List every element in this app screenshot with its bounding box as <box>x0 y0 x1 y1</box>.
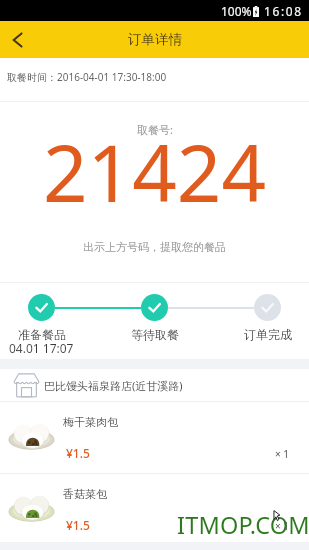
staticText: × 1 <box>275 447 290 461</box>
staticText: ¥1.5 <box>66 445 90 461</box>
staticText: 100% <box>221 3 252 19</box>
staticText: 梅干菜肉包 <box>63 415 118 429</box>
staticText: 出示上方号码，提取您的餐品 <box>83 240 226 254</box>
button[interactable]: 巴比馒头福泉路店(近甘溪路) <box>0 369 309 401</box>
staticText: 16:08 <box>264 3 303 19</box>
staticText: ¥1.5 <box>66 517 90 533</box>
staticText: 取餐时间：2016-04-01 17:30-18:00 <box>7 70 167 84</box>
staticText: 订单完成 <box>244 327 292 342</box>
staticText: 订单详情 <box>128 31 182 48</box>
staticText: 取餐号: <box>137 122 173 137</box>
button[interactable]: 香菇菜包 <box>0 474 309 542</box>
button[interactable]: 梅干菜肉包 <box>0 402 309 473</box>
staticText: 巴比馒头福泉路店(近甘溪路) <box>44 378 183 393</box>
staticText: ITMOP.COM <box>177 509 309 541</box>
staticText: 准备餐品 <box>18 327 66 342</box>
staticText: × 1 <box>275 519 290 533</box>
button[interactable]: Back <box>0 21 37 58</box>
staticText: 等待取餐 <box>131 327 179 342</box>
staticText: 04.01 17:07 <box>9 340 74 356</box>
staticText: 21424 <box>43 119 267 225</box>
staticText: 香菇菜包 <box>63 487 107 501</box>
